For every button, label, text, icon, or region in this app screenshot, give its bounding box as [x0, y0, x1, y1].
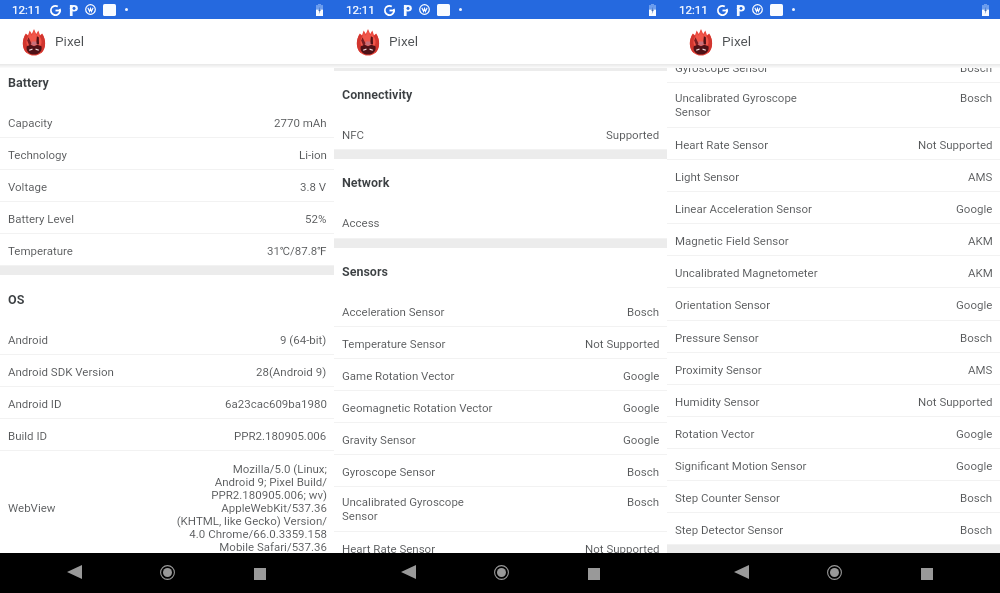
staticText: Magnetic Field Sensor: [675, 234, 789, 247]
staticText: Google: [623, 369, 660, 382]
button[interactable]: Recent apps: [579, 559, 609, 589]
staticText: 9 (64-bit): [280, 333, 327, 346]
staticText: Bosch: [960, 91, 993, 104]
staticText: Pixel: [722, 33, 752, 49]
staticText: Light Sensor: [675, 170, 740, 183]
staticText: 2770 mAh: [274, 116, 327, 129]
staticText: Build ID: [8, 429, 48, 442]
staticText: NFC: [342, 128, 365, 141]
button[interactable]: Linear Acceleration Sensor: [667, 192, 1000, 224]
button[interactable]: Back: [59, 557, 89, 587]
button[interactable]: Voltage: [0, 170, 334, 202]
staticText: Gravity Sensor: [342, 433, 416, 446]
staticText: Uncalibrated Gyroscope Sensor: [675, 91, 960, 119]
staticText: Supported: [606, 128, 660, 141]
button[interactable]: Technology: [0, 138, 334, 170]
button[interactable]: Uncalibrated Gyroscope Sensor: [667, 83, 1000, 128]
staticText: AKM: [968, 266, 993, 279]
staticText: Pixel: [55, 33, 85, 49]
staticText: Uncalibrated Gyroscope Sensor: [342, 495, 627, 523]
button[interactable]: Proximity Sensor: [667, 353, 1000, 385]
staticText: Heart Rate Sensor: [342, 542, 436, 553]
staticText: 12:11: [679, 3, 708, 17]
staticText: Android ID: [8, 397, 62, 410]
staticText: Not Supported: [585, 542, 660, 553]
button[interactable]: Pressure Sensor: [667, 321, 1000, 353]
button[interactable]: Game Rotation Vector: [334, 359, 667, 391]
staticText: Pixel: [389, 33, 419, 49]
staticText: Rotation Vector: [675, 427, 755, 440]
staticText: Bosch: [960, 331, 993, 344]
staticText: Capacity: [8, 116, 53, 129]
staticText: Technology: [8, 148, 67, 161]
staticText: 28(Android 9): [256, 365, 327, 378]
button[interactable]: Recent apps: [245, 559, 275, 589]
button[interactable]: WebView: [0, 451, 334, 553]
staticText: AMS: [968, 363, 993, 376]
button[interactable]: Android SDK Version: [0, 355, 334, 387]
button[interactable]: Gyroscope Sensor: [334, 455, 667, 487]
button[interactable]: Android ID: [0, 387, 334, 419]
button[interactable]: Step Counter Sensor: [667, 481, 1000, 513]
staticText: Voltage: [8, 180, 47, 193]
staticText: Bosch: [960, 523, 993, 536]
staticText: Step Detector Sensor: [675, 523, 784, 536]
button[interactable]: Capacity: [0, 106, 334, 138]
button[interactable]: Step Detector Sensor: [667, 513, 1000, 545]
button[interactable]: Light Sensor: [667, 160, 1000, 192]
button[interactable]: Geomagnetic Rotation Vector: [334, 391, 667, 423]
staticText: Acceleration Sensor: [342, 305, 445, 318]
staticText: Access: [342, 216, 380, 229]
button[interactable]: Magnetic Field Sensor: [667, 224, 1000, 256]
button[interactable]: Significant Motion Sensor: [667, 449, 1000, 481]
button[interactable]: Heart Rate Sensor: [334, 532, 667, 553]
button[interactable]: Back: [726, 557, 756, 587]
staticText: Not Supported: [918, 138, 993, 151]
button[interactable]: Android: [0, 323, 334, 355]
button[interactable]: Home: [819, 557, 849, 587]
staticText: Gyroscope Sensor: [342, 465, 436, 478]
staticText: Temperature Sensor: [342, 337, 446, 350]
button[interactable]: Uncalibrated Magnetometer: [667, 256, 1000, 288]
button[interactable]: Heart Rate Sensor: [667, 128, 1000, 160]
staticText: Pressure Sensor: [675, 331, 759, 344]
button[interactable]: Temperature: [0, 234, 334, 266]
staticText: Battery: [8, 75, 49, 90]
staticText: Significant Motion Sensor: [675, 459, 807, 472]
staticText: Orientation Sensor: [675, 298, 771, 311]
button[interactable]: Battery Level: [0, 202, 334, 234]
staticText: Sensors: [342, 264, 388, 279]
staticText: Game Rotation Vector: [342, 369, 455, 382]
button[interactable]: Gravity Sensor: [334, 423, 667, 455]
staticText: 6a23cac609ba1980: [225, 397, 327, 410]
button[interactable]: Humidity Sensor: [667, 385, 1000, 417]
staticText: 3.8 V: [300, 180, 327, 193]
button[interactable]: Temperature Sensor: [334, 327, 667, 359]
staticText: Network: [342, 175, 390, 190]
staticText: Temperature: [8, 244, 73, 257]
staticText: Mozilla/5.0 (Linux; Android 9; Pixel Bui…: [0, 462, 327, 553]
button[interactable]: Home: [152, 557, 182, 587]
staticText: 52%: [305, 212, 327, 225]
button[interactable]: Rotation Vector: [667, 417, 1000, 449]
button[interactable]: Orientation Sensor: [667, 288, 1000, 321]
button[interactable]: Home: [486, 557, 516, 587]
button[interactable]: Build ID: [0, 419, 334, 451]
staticText: Gyroscope Sensor: [675, 64, 769, 74]
staticText: Bosch: [627, 465, 660, 478]
staticText: Bosch: [627, 495, 660, 508]
button[interactable]: NFC: [334, 118, 667, 150]
button[interactable]: Access: [334, 206, 667, 239]
staticText: Li-ion: [299, 148, 327, 161]
button[interactable]: Uncalibrated Gyroscope Sensor: [334, 487, 667, 532]
staticText: Google: [623, 433, 660, 446]
button[interactable]: Recent apps: [912, 559, 942, 589]
staticText: Uncalibrated Magnetometer: [675, 266, 818, 279]
button[interactable]: Back: [393, 557, 423, 587]
staticText: Google: [956, 459, 993, 472]
button[interactable]: Acceleration Sensor: [334, 295, 667, 327]
staticText: Bosch: [960, 64, 993, 74]
staticText: Geomagnetic Rotation Vector: [342, 401, 493, 414]
button[interactable]: Gyroscope Sensor: [667, 64, 1000, 83]
staticText: 12:11: [12, 3, 41, 17]
